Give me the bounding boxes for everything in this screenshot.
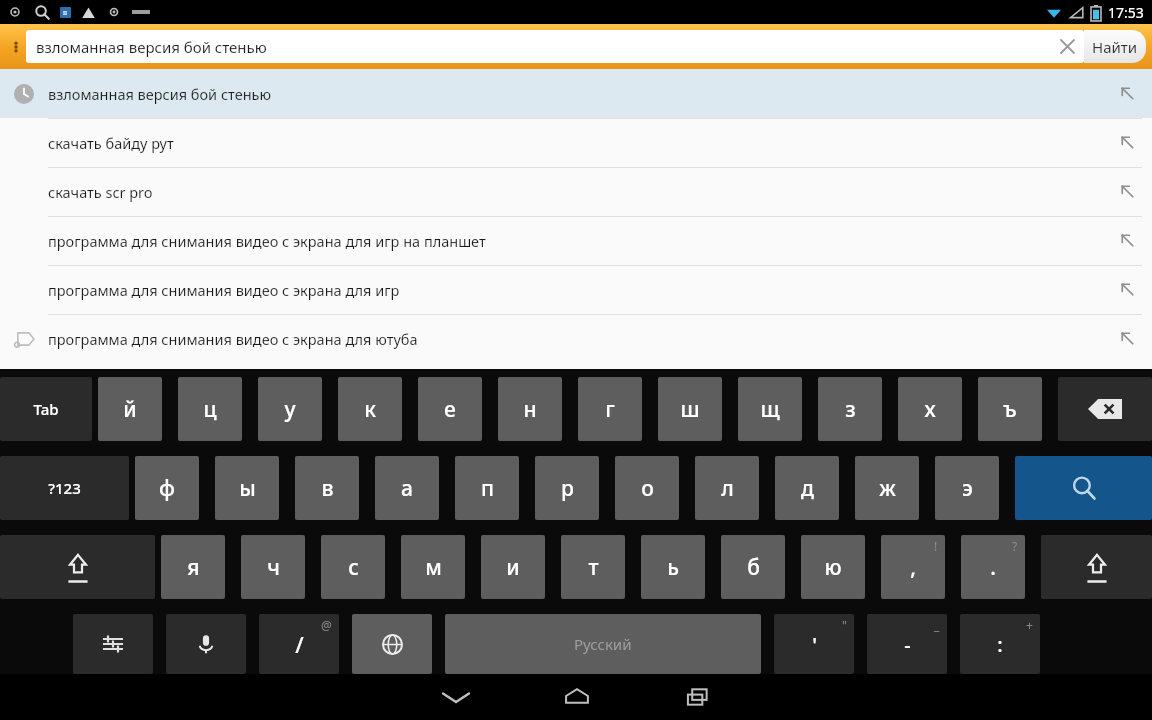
staticText: . [990,553,996,582]
staticText: з [845,395,856,424]
button[interactable]: щ [738,377,802,441]
staticText: взломанная версия бой стенью [36,37,1050,57]
button[interactable]: Change language [352,614,432,674]
button[interactable]: ц [178,377,242,441]
button[interactable]: Space [445,614,761,674]
staticText: программа для снимания видео с экрана дл… [48,280,400,300]
staticText: й [123,395,137,424]
button[interactable]: Insert suggestion [1102,314,1152,363]
button[interactable]: программа для снимания видео с экрана дл… [0,216,1152,265]
button[interactable]: с [321,535,385,599]
staticText: э [962,474,973,503]
button[interactable]: программа для снимания видео с экрана дл… [0,314,1152,363]
button[interactable]: Home [519,674,634,720]
staticText: б [747,553,760,582]
button[interactable]: о [615,456,679,520]
button[interactable]: Tab [0,377,92,441]
staticText: и [506,553,520,582]
button[interactable]: ъ [978,377,1042,441]
button[interactable]: ь [641,535,705,599]
button[interactable]: х [898,377,962,441]
staticText: в [321,474,334,503]
staticText: _ [934,617,940,633]
staticText: х [924,395,936,424]
button[interactable]: . [961,535,1025,599]
staticText: ч [267,553,280,582]
staticText: м [425,553,442,582]
button[interactable]: Recent apps [640,674,755,720]
button[interactable]: б [721,535,785,599]
button[interactable]: скачать scr pro [0,167,1152,216]
button[interactable]: взломанная версия бой стенью [26,30,1084,63]
staticText: ц [203,395,217,424]
staticText: о [641,474,654,503]
button[interactable]: Keyboard settings [73,614,153,674]
staticText: г [605,395,615,424]
staticText: , [910,553,916,582]
button[interactable]: з [818,377,882,441]
button[interactable]: и [481,535,545,599]
button[interactable]: ж [855,456,919,520]
button[interactable]: а [375,456,439,520]
button[interactable]: More options [6,24,26,69]
button[interactable]: н [498,377,562,441]
staticText: е [444,395,456,424]
staticText: скачать байду рут [48,133,174,153]
button[interactable]: э [935,456,999,520]
button[interactable]: Insert suggestion [1102,265,1152,314]
button[interactable]: ы [215,456,279,520]
staticText: с [348,553,359,582]
button[interactable]: д [775,456,839,520]
button[interactable]: в [295,456,359,520]
button[interactable]: ш [658,377,722,441]
button[interactable]: Hide keyboard [398,674,513,720]
button[interactable]: Найти [1084,30,1146,63]
button[interactable]: скачать байду рут [0,118,1152,167]
staticText: 17:53 [1108,3,1144,22]
button[interactable]: взломанная версия бой стенью [0,69,1152,118]
button[interactable]: Voice input [166,614,246,674]
button[interactable]: к [338,377,402,441]
button[interactable]: Shift [0,535,155,599]
button[interactable]: ф [135,456,199,520]
staticText: Найти [1092,37,1138,57]
staticText: ь [667,553,679,582]
button[interactable]: й [98,377,162,441]
button[interactable]: Clear [1050,30,1084,63]
button[interactable]: Backspace [1058,377,1152,441]
button[interactable]: Shift [1041,535,1152,599]
button[interactable]: у [258,377,322,441]
staticText: @ [321,617,332,633]
staticText: к [364,395,376,424]
button[interactable]: Insert suggestion [1102,69,1152,118]
button[interactable]: , [881,535,945,599]
button[interactable]: Search [1015,456,1152,520]
button[interactable]: ч [241,535,305,599]
button[interactable]: : [960,614,1040,674]
button[interactable]: Insert suggestion [1102,216,1152,265]
button[interactable]: / [259,614,339,674]
button[interactable]: е [418,377,482,441]
staticText: н [523,395,537,424]
staticText: у [284,395,296,424]
button[interactable]: Insert suggestion [1102,118,1152,167]
button[interactable]: ю [801,535,865,599]
staticText: программа для снимания видео с экрана дл… [48,231,486,251]
button[interactable]: п [455,456,519,520]
button[interactable]: я [161,535,225,599]
staticText: - [904,631,911,658]
button[interactable]: программа для снимания видео с экрана дл… [0,265,1152,314]
button[interactable]: - [867,614,947,674]
button[interactable]: г [578,377,642,441]
button[interactable]: м [401,535,465,599]
button[interactable]: Insert suggestion [1102,167,1152,216]
button[interactable]: р [535,456,599,520]
staticText: д [801,474,814,503]
staticText: р [561,474,574,503]
button[interactable]: т [561,535,625,599]
button[interactable]: л [695,456,759,520]
staticText: ш [680,395,700,424]
button[interactable]: ' [774,614,854,674]
staticText: + [1026,617,1033,633]
button[interactable]: ?123 [0,456,129,520]
